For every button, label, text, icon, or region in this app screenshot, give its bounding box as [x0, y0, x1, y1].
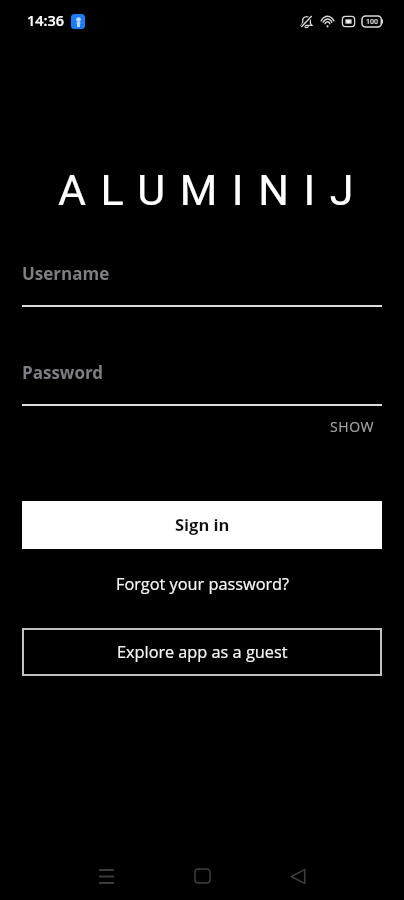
button[interactable]: Recent apps [86, 856, 126, 896]
staticText: Password [22, 361, 104, 384]
button[interactable]: SHOW [324, 414, 382, 439]
staticText: Sign in [175, 513, 230, 535]
staticText: SHOW [330, 417, 375, 436]
staticText: Username [22, 262, 110, 285]
staticText: Forgot your password? [116, 573, 289, 595]
staticText: 14:36 [27, 11, 65, 31]
button[interactable]: Sign in [22, 501, 382, 549]
staticText: ALUMINIJ [11, 165, 404, 215]
staticText: 100 [366, 17, 378, 27]
button[interactable]: Home [182, 856, 222, 896]
button[interactable]: Back [278, 856, 318, 896]
button[interactable]: Forgot your password? [112, 569, 293, 599]
staticText: Explore app as a guest [117, 641, 288, 663]
button[interactable]: Explore app as a guest [22, 628, 382, 676]
